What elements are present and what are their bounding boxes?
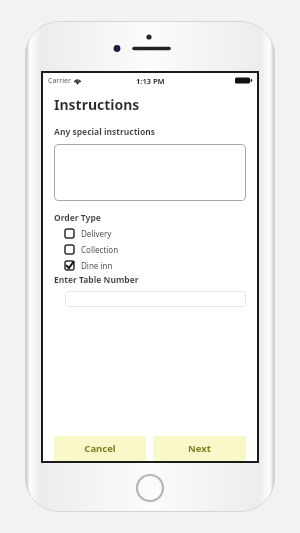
button[interactable] [54,144,246,201]
staticText: Collection [81,244,119,255]
staticText: 1:13 PM [136,76,165,86]
other: Home [136,474,164,502]
button[interactable]: Collection [65,244,119,255]
staticText: Instructions [54,95,140,114]
staticText: Delivery [81,228,112,239]
button[interactable] [65,291,246,307]
button[interactable]: Dine inn [65,260,113,271]
staticText: Cancel [84,442,116,455]
button[interactable]: Cancel [54,436,146,461]
staticText: Carrier [48,76,71,86]
staticText: Any special instructions [54,126,156,138]
staticText: Enter Table Number [54,274,139,286]
button[interactable]: Next [153,436,246,461]
staticText: Dine inn [81,260,113,271]
button[interactable]: Delivery [65,228,112,239]
staticText: Next [188,442,211,455]
staticText: Order Type [54,212,101,224]
